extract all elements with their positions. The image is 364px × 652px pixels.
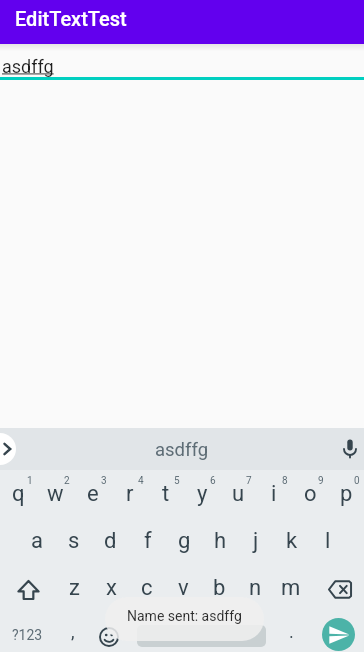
button[interactable]: Expand suggestions	[0, 433, 16, 465]
button[interactable]: n	[237, 564, 273, 611]
button[interactable]: e	[74, 470, 111, 517]
staticText: 5	[174, 475, 180, 487]
button[interactable]: j	[238, 517, 274, 564]
staticText: 4	[138, 475, 144, 487]
staticText: Name sent: asdffg	[127, 608, 242, 624]
button[interactable]: EditTextTest	[0, 0, 364, 44]
button[interactable]: .	[273, 611, 309, 652]
staticText: q	[12, 481, 25, 507]
button[interactable]: ,	[55, 611, 91, 652]
staticText: h	[214, 528, 227, 554]
staticText: k	[286, 528, 298, 554]
staticText: 1	[27, 475, 33, 487]
staticText: 7	[246, 475, 252, 487]
staticText: r	[126, 481, 134, 507]
staticText: j	[253, 528, 259, 554]
staticText: z	[69, 575, 80, 601]
staticText: w	[47, 481, 64, 507]
staticText: m	[281, 575, 301, 601]
button[interactable]: o	[292, 470, 328, 517]
staticText: b	[213, 575, 226, 601]
button[interactable]: p	[328, 470, 364, 517]
staticText: e	[87, 481, 99, 507]
button[interactable]: c	[129, 564, 165, 611]
staticText: f	[144, 528, 152, 554]
button[interactable]: Send	[322, 618, 355, 651]
button[interactable]: k	[274, 517, 310, 564]
staticText: EditTextTest	[15, 7, 127, 30]
button[interactable]: Space	[137, 625, 266, 647]
button[interactable]: a	[18, 517, 55, 564]
button[interactable]: l	[310, 517, 346, 564]
button[interactable]: w	[37, 470, 74, 517]
staticText: asdffg	[2, 56, 54, 77]
button[interactable]: Name sent: asdffg	[105, 597, 264, 641]
staticText: n	[249, 575, 262, 601]
button[interactable]: x	[93, 564, 129, 611]
staticText: x	[106, 575, 117, 601]
staticText: 2	[64, 475, 70, 487]
staticText: asdffg	[155, 439, 209, 461]
staticText: g	[178, 528, 191, 554]
button[interactable]: Emoji	[91, 611, 127, 652]
button[interactable]: v	[165, 564, 201, 611]
button[interactable]: Backspace	[309, 564, 364, 611]
button[interactable]: Shift	[0, 564, 56, 611]
staticText: 6	[210, 475, 216, 487]
staticText: ?123	[12, 627, 43, 643]
button[interactable]: i	[256, 470, 292, 517]
button[interactable]: t	[148, 470, 184, 517]
button[interactable]: z	[56, 564, 93, 611]
staticText: 3	[101, 475, 107, 487]
staticText: c	[141, 575, 153, 601]
button[interactable]: q	[0, 470, 37, 517]
staticText: i	[271, 481, 277, 507]
staticText: o	[304, 481, 317, 507]
staticText: 0	[354, 475, 360, 487]
button[interactable]: g	[166, 517, 202, 564]
button[interactable]: Voice input	[336, 435, 364, 463]
button[interactable]: y	[184, 470, 220, 517]
button[interactable]: h	[202, 517, 238, 564]
staticText: l	[325, 528, 331, 554]
staticText: y	[197, 481, 208, 507]
staticText: 9	[318, 475, 324, 487]
button[interactable]: u	[220, 470, 256, 517]
staticText: u	[232, 481, 245, 507]
staticText: d	[104, 528, 117, 554]
button[interactable]: f	[129, 517, 166, 564]
staticText: .	[289, 621, 294, 642]
button[interactable]: m	[273, 564, 309, 611]
staticText: v	[178, 575, 189, 601]
staticText: ,	[71, 621, 75, 642]
button[interactable]: s	[55, 517, 92, 564]
button[interactable]: b	[201, 564, 237, 611]
staticText: t	[162, 481, 170, 507]
staticText: p	[340, 481, 353, 507]
button[interactable]: ?123	[0, 611, 55, 652]
button[interactable]: r	[111, 470, 148, 517]
staticText: 8	[282, 475, 288, 487]
staticText: a	[31, 528, 43, 554]
button[interactable]: d	[92, 517, 129, 564]
staticText: s	[68, 528, 80, 554]
